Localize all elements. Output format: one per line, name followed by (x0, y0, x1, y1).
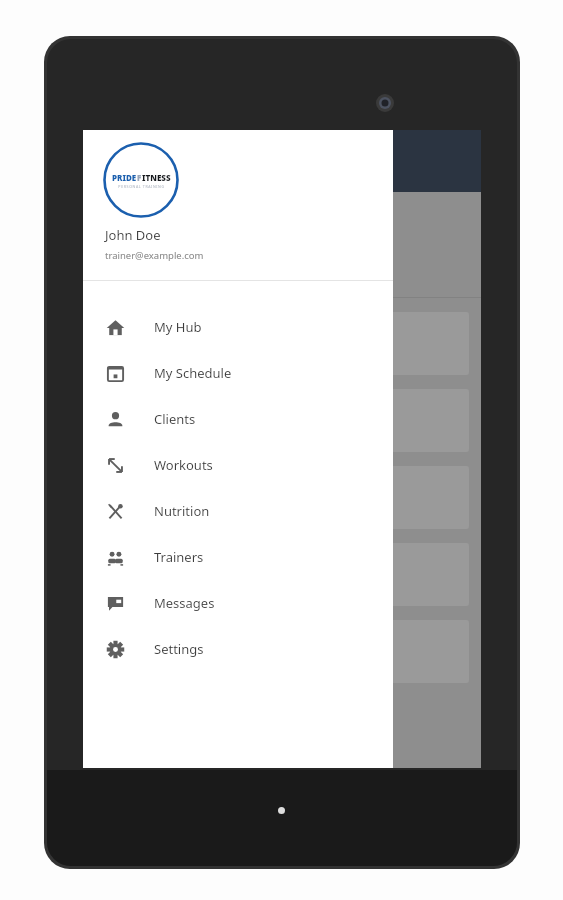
staticText: Clients (154, 410, 196, 428)
staticText: ITNESS (142, 172, 171, 183)
staticText: Nutrition (154, 502, 210, 520)
button[interactable]: Trainers (83, 534, 393, 580)
staticText: My Hub (154, 318, 202, 336)
button[interactable] (95, 312, 469, 375)
staticText: DURATION (249, 272, 315, 287)
button[interactable] (95, 620, 469, 683)
button[interactable] (95, 543, 469, 606)
staticText: Messages (154, 594, 215, 612)
staticText: John Doe (105, 226, 161, 244)
staticText: Workouts (154, 456, 213, 474)
staticText: Trainers (154, 548, 204, 566)
staticText: PRIDE (112, 172, 137, 183)
button[interactable]: Messages (83, 580, 393, 626)
button[interactable] (95, 466, 469, 529)
button[interactable] (95, 389, 469, 452)
staticText: Settings (154, 640, 204, 658)
button[interactable]: My Schedule (83, 350, 393, 396)
staticText: F (137, 172, 142, 183)
button[interactable]: Clients (83, 396, 393, 442)
button[interactable]: Settings (83, 626, 393, 672)
staticText: My Schedule (154, 364, 232, 382)
staticText: PERSONAL TRAINING (118, 184, 165, 189)
staticText: trainer@example.com (105, 249, 204, 262)
button[interactable]: Nutrition (83, 488, 393, 534)
button[interactable]: Workouts (83, 442, 393, 488)
button[interactable]: My Hub (83, 304, 393, 350)
